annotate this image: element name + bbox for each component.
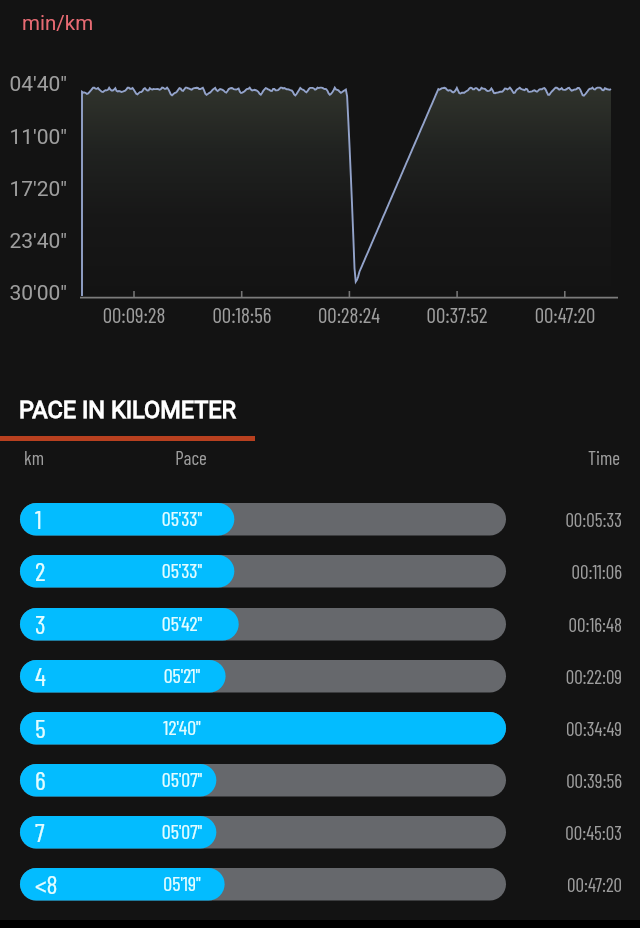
staticText: 05'33" [142,506,222,530]
staticText: 00:47:20 [515,302,615,327]
staticText: 23'40" [0,229,67,254]
button[interactable]: 1 [0,494,640,546]
button[interactable]: <8 [0,859,640,911]
staticText: 1 [35,503,42,534]
staticText: 12'40" [142,715,222,739]
staticText: 2 [35,555,46,586]
button[interactable]: 7 [0,807,640,859]
staticText: km [24,446,45,469]
staticText: 05'42" [142,611,222,635]
staticText: 04'40" [0,72,67,97]
staticText: min/km [22,11,94,35]
staticText: 00:11:06 [542,560,622,583]
staticText: 05'21" [142,663,222,687]
staticText: 00:28:24 [299,302,399,327]
staticText: 7 [35,816,45,847]
button[interactable]: 4 [0,651,640,703]
button[interactable]: 5 [0,703,640,755]
staticText: 00:16:48 [542,613,622,636]
staticText: 00:18:56 [192,302,292,327]
staticText: Time [540,446,620,469]
staticText: <8 [35,868,58,899]
staticText: 00:39:56 [542,769,622,792]
staticText: PACE IN KILOMETER [19,396,237,424]
button[interactable]: 2 [0,546,640,598]
staticText: 3 [35,608,46,639]
staticText: 00:34:49 [542,717,622,740]
staticText: Pace [151,446,231,469]
staticText: 11'00" [0,125,67,150]
staticText: 00:37:52 [407,302,507,327]
button[interactable]: 6 [0,755,640,807]
button[interactable]: 3 [0,599,640,651]
staticText: 17'20" [0,177,67,202]
staticText: 30'00" [0,281,67,306]
staticText: 4 [35,660,46,691]
staticText: 05'07" [142,767,222,791]
staticText: 5 [35,712,46,743]
staticText: 05'19" [142,871,222,895]
staticText: 6 [35,764,46,795]
staticText: 00:45:03 [542,821,622,844]
staticText: 00:47:20 [542,873,622,896]
staticText: 00:09:28 [84,302,184,327]
staticText: 05'07" [142,819,222,843]
staticText: 00:05:33 [542,508,622,531]
staticText: 05'33" [142,558,222,582]
staticText: 00:22:09 [542,665,622,688]
